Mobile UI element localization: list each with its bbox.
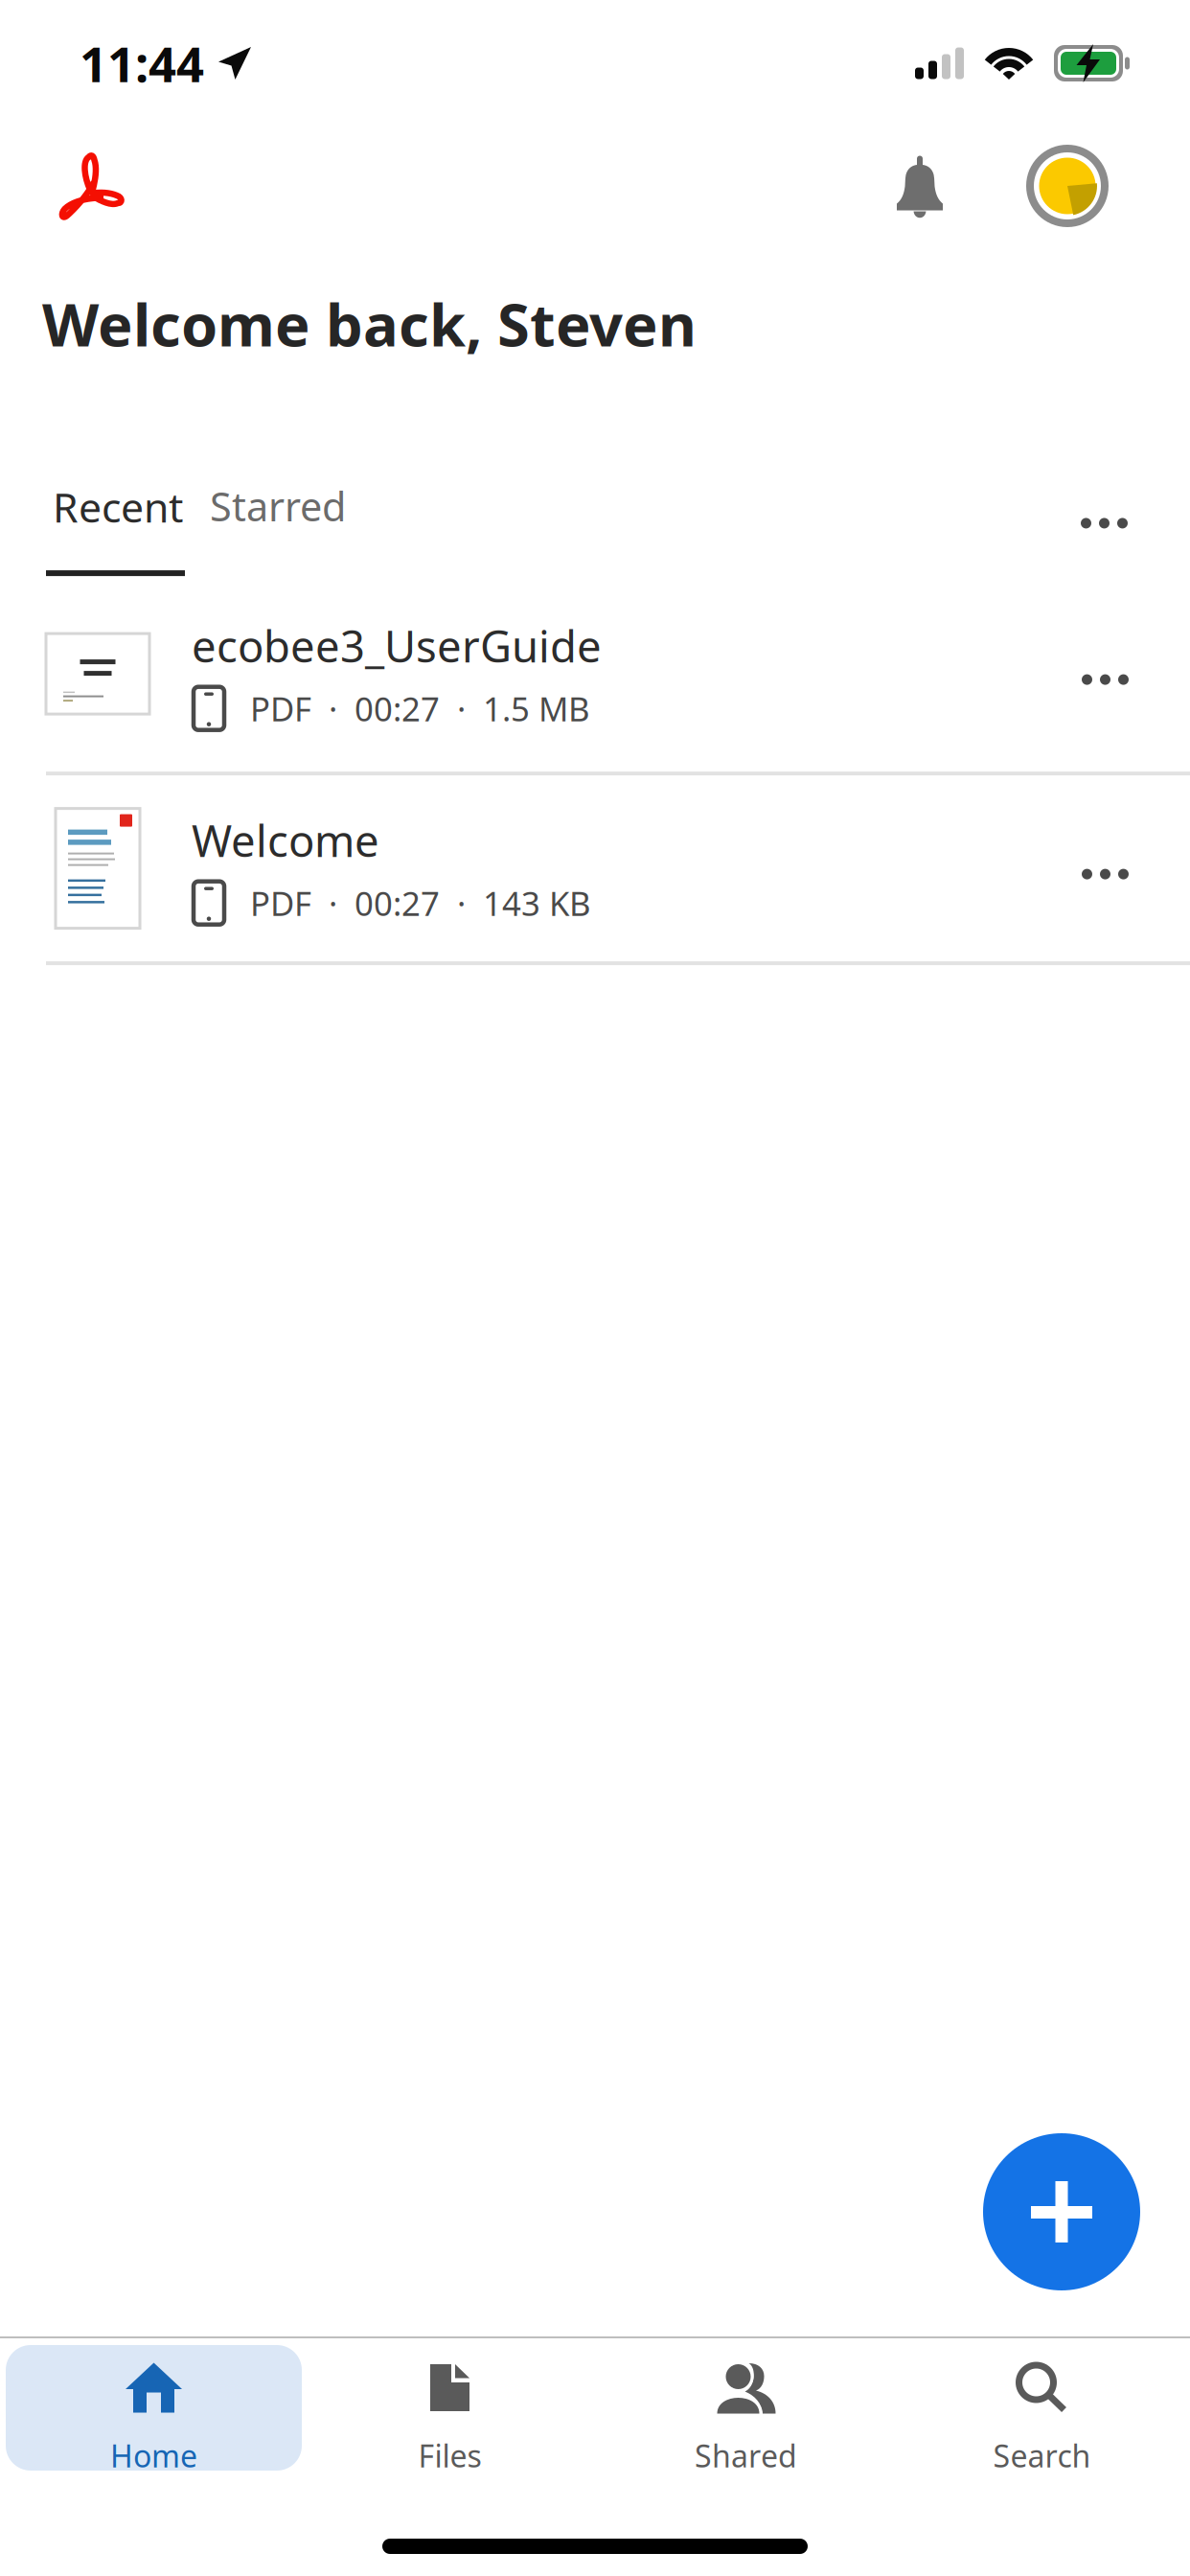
staticText: Recent (53, 480, 183, 534)
staticText: Files (418, 2435, 481, 2476)
button[interactable]: More options (1056, 480, 1144, 553)
staticText: ecobee3_UserGuide (192, 617, 602, 674)
button[interactable]: More actions for ecobee3_UserGuide (1061, 642, 1150, 706)
button[interactable]: Search (894, 2345, 1190, 2471)
button[interactable]: Shared (598, 2345, 894, 2471)
staticText: PDF · 00:27 · 143 KB (250, 881, 591, 925)
button[interactable]: Files (302, 2345, 598, 2471)
button[interactable]: Home (6, 2345, 302, 2471)
staticText: Welcome (192, 811, 379, 869)
staticText: 11:44 (80, 31, 204, 96)
staticText: Welcome back, Steven (42, 285, 697, 363)
button[interactable]: Account (989, 149, 1190, 223)
button[interactable]: Create (983, 2133, 1140, 2290)
staticText: Shared (695, 2435, 797, 2476)
button[interactable]: Recent (36, 480, 198, 576)
staticText: PDF · 00:27 · 1.5 MB (250, 686, 590, 730)
button[interactable]: Welcome (0, 775, 1190, 961)
button[interactable]: More actions for Welcome (1061, 836, 1150, 900)
staticText: Search (993, 2435, 1091, 2476)
staticText: Home (110, 2435, 197, 2476)
button[interactable]: Notifications (874, 140, 989, 231)
staticText: Starred (210, 480, 346, 532)
button[interactable]: Adobe Acrobat (0, 148, 144, 224)
button[interactable]: Starred (198, 480, 355, 532)
button[interactable]: ecobee3_UserGuide (0, 576, 1190, 772)
